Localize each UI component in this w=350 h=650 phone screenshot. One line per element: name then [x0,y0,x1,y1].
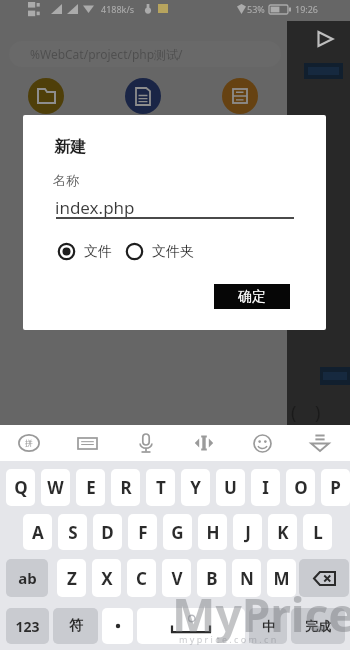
staticText: Z [67,567,77,590]
staticText: 4188k/s [101,3,135,15]
staticText: 123 [15,617,40,636]
button[interactable]: 完成 [291,608,345,644]
staticText: 完成 [305,618,331,634]
button[interactable]: O [286,469,315,506]
button[interactable]: Backspace [299,559,349,597]
button[interactable]: T [146,469,175,506]
staticText: index.php [55,196,135,219]
button[interactable]: 中 [249,608,287,644]
button[interactable]: Space [137,608,245,644]
staticText: T [156,476,166,499]
staticText: V [171,567,183,590]
staticText: I [262,476,269,499]
button[interactable]: Keyboard [66,425,108,461]
staticText: G [171,521,184,544]
staticText: B [206,567,218,590]
button[interactable]: Server [222,78,258,114]
button[interactable]: H [198,514,227,550]
button[interactable]: E [76,469,105,506]
button[interactable]: M [267,559,296,597]
button[interactable]: R [111,469,140,506]
staticText: E [86,476,96,499]
button[interactable]: Input method [8,425,50,461]
button[interactable]: 123 [6,608,49,644]
staticText: A [32,521,44,544]
staticText: F [138,521,148,544]
staticText: P [330,476,341,499]
staticText: R [120,476,132,499]
button[interactable]: S [58,514,87,550]
staticText: 文件 [84,243,112,261]
button[interactable]: Period [102,608,133,644]
staticText: 文件夹 [152,243,194,261]
staticText: D [101,521,114,544]
button[interactable]: K [268,514,297,550]
button[interactable]: 文件夹 [125,242,194,261]
button[interactable]: Hide keyboard [299,425,341,461]
staticText: m y p r i c e . c o m . c n [179,633,277,645]
staticText: S [68,521,78,544]
staticText: 确定 [238,288,266,306]
button[interactable]: X [92,559,121,597]
button[interactable]: Emoji [241,425,283,461]
staticText: N [240,567,254,590]
button[interactable]: ab [6,559,48,597]
button[interactable]: Y [181,469,210,506]
staticText: 53% [247,3,265,15]
button[interactable]: J [233,514,262,550]
button[interactable]: W [41,469,70,506]
button[interactable]: Move cursor [183,425,225,461]
button[interactable]: I [251,469,280,506]
staticText: 中 [262,618,275,634]
button[interactable]: D [93,514,122,550]
staticText: C [136,567,147,590]
button[interactable]: %WebCat/project/php测试/ [9,41,281,67]
staticText: 名称 [53,172,79,188]
staticText: MyPrice [172,583,350,646]
button[interactable]: Q [6,469,35,506]
button[interactable]: 符 [53,608,98,644]
button[interactable]: G [163,514,192,550]
button[interactable]: U [216,469,245,506]
button[interactable]: P [321,469,350,506]
button[interactable]: New file [125,78,161,114]
button[interactable]: New folder [28,78,64,114]
staticText: H [206,521,220,544]
staticText: Y [190,476,201,499]
staticText: ab [18,568,37,588]
button[interactable]: L [303,514,332,550]
staticText: M [273,567,290,590]
button[interactable]: 文件 [57,242,112,261]
button[interactable]: N [232,559,261,597]
button[interactable]: C [127,559,156,597]
button[interactable]: 确定 [214,284,290,309]
staticText: 19:26 [295,3,319,15]
staticText: 拼 [25,438,33,448]
staticText: U [224,476,237,499]
staticText: O [294,476,308,499]
staticText: %WebCat/project/php测试/ [30,46,183,62]
staticText: 新建 [54,137,86,157]
staticText: J [245,521,251,544]
button[interactable]: B [197,559,226,597]
staticText: 符 [69,617,83,635]
button[interactable]: Voice input [125,425,167,461]
staticText: W [47,476,64,499]
button[interactable]: A [23,514,52,550]
staticText: Q [14,476,28,499]
button[interactable]: Z [57,559,86,597]
staticText: K [277,521,289,544]
button[interactable]: F [128,514,157,550]
button[interactable]: V [162,559,191,597]
staticText: L [313,521,323,544]
staticText: X [101,567,113,590]
